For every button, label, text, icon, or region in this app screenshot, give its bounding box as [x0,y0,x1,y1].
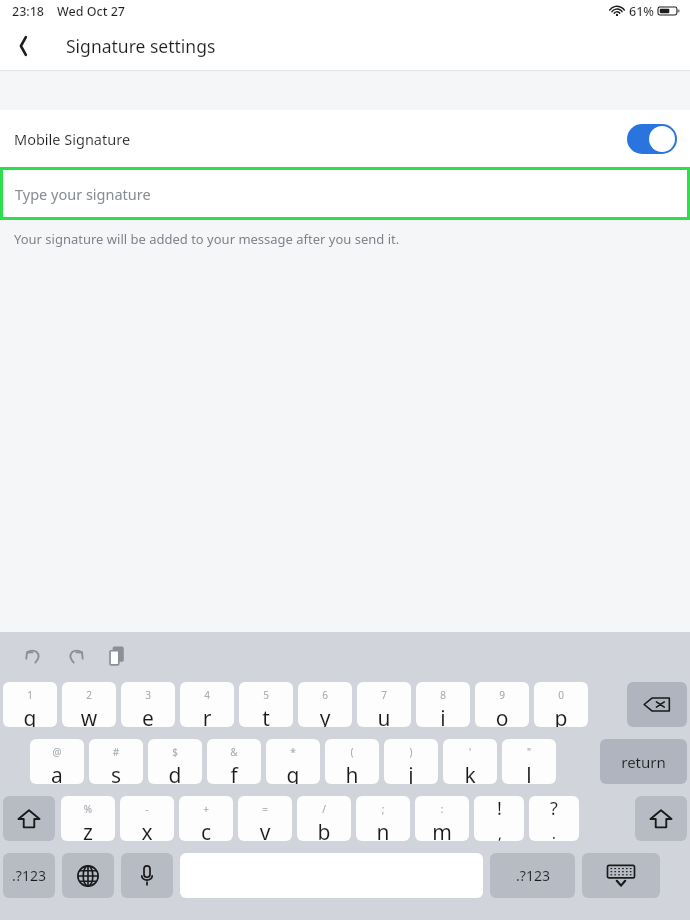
staticText: * [266,745,320,759]
staticText: e [121,704,175,727]
staticText: ( [325,745,379,759]
button[interactable]: Mobile Signature [0,110,690,167]
staticText: % [61,802,115,816]
staticText: = [238,802,292,816]
staticText: 23:18 [12,3,45,20]
button[interactable]: 5 [239,682,293,727]
staticText: .?123 [12,866,46,885]
staticText: o [475,704,529,727]
staticText: n [356,818,410,841]
button[interactable]: ! [474,796,524,841]
button[interactable]: Undo [14,636,54,676]
button[interactable]: $ [148,739,202,784]
button[interactable]: 8 [416,682,470,727]
button[interactable]: * [266,739,320,784]
staticText: 61% [629,3,654,20]
button[interactable]: Type your signature [3,170,687,217]
button[interactable]: 4 [180,682,234,727]
staticText: x [120,818,174,841]
staticText: m [415,818,469,841]
button[interactable]: Shift [635,796,687,841]
staticText: p [534,704,588,727]
button[interactable]: # [89,739,143,784]
button[interactable]: Switch keyboard [62,853,114,898]
staticText: z [61,818,115,841]
staticText: Mobile Signature [14,129,131,149]
staticText: : [415,802,469,816]
button[interactable]: 9 [475,682,529,727]
staticText: g [266,761,320,784]
button[interactable]: @ [30,739,84,784]
button[interactable]: Redo [55,636,95,676]
button[interactable]: 6 [298,682,352,727]
staticText: h [325,761,379,784]
staticText: 0 [534,688,588,702]
staticText: Wed Oct 27 [57,3,125,20]
button[interactable]: " [502,739,556,784]
button[interactable]: Voice input [121,853,173,898]
staticText: / [297,802,351,816]
staticText: . [552,824,556,841]
staticText: j [384,761,438,784]
button[interactable]: Hide keyboard [582,853,660,898]
button[interactable]: 3 [121,682,175,727]
button[interactable]: : [415,796,469,841]
button[interactable]: 1 [3,682,57,727]
button[interactable]: Shift [3,796,55,841]
staticText: Type your signature [15,184,151,204]
staticText: ? [550,796,558,821]
button[interactable]: ( [325,739,379,784]
staticText: 4 [180,688,234,702]
button[interactable]: ' [443,739,497,784]
staticText: .?123 [516,866,550,885]
button[interactable]: + [179,796,233,841]
staticText: r [180,704,234,727]
staticText: 8 [416,688,470,702]
staticText: ) [384,745,438,759]
staticText: a [30,761,84,784]
staticText: Your signature will be added to your mes… [14,230,400,248]
staticText: f [207,761,261,784]
button[interactable]: ; [356,796,410,841]
button[interactable]: 0 [534,682,588,727]
button[interactable]: Mobile Signature toggle, on [627,124,677,154]
button[interactable]: % [61,796,115,841]
staticText: 1 [3,688,57,702]
staticText: 5 [239,688,293,702]
button[interactable]: 7 [357,682,411,727]
button[interactable]: Back [1,24,45,68]
staticText: c [179,818,233,841]
button[interactable]: ? [529,796,579,841]
staticText: $ [148,745,202,759]
staticText: d [148,761,202,784]
staticText: w [62,704,116,727]
button[interactable]: Paste [96,636,136,676]
staticText: 6 [298,688,352,702]
button[interactable]: return [600,739,687,784]
staticText: b [297,818,351,841]
button[interactable]: = [238,796,292,841]
staticText: ; [356,802,410,816]
button[interactable]: - [120,796,174,841]
staticText: 7 [357,688,411,702]
staticText: q [3,704,57,727]
staticText: - [120,802,174,816]
staticText: ! [497,796,502,821]
button[interactable]: ) [384,739,438,784]
staticText: u [357,704,411,727]
button[interactable]: & [207,739,261,784]
button[interactable]: Backspace [627,682,687,727]
staticText: s [89,761,143,784]
staticText: Signature settings [66,34,216,58]
button[interactable]: 2 [62,682,116,727]
staticText: l [502,761,556,784]
button[interactable]: .?123 [490,853,575,898]
staticText: & [207,745,261,759]
button[interactable]: .?123 [3,853,55,898]
staticText: , [498,824,502,841]
staticText: # [89,745,143,759]
staticText: k [443,761,497,784]
button[interactable]: / [297,796,351,841]
staticText: @ [30,745,84,759]
